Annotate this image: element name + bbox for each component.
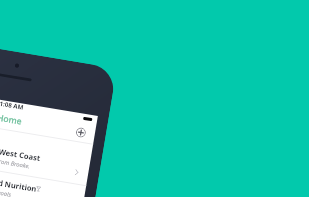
staticText: Food Nurition	[0, 175, 38, 194]
staticText: Home	[0, 112, 23, 128]
button[interactable]: Sunset Trip	[0, 191, 81, 197]
staticText: West Coast	[0, 146, 42, 163]
staticText: from Brooke.	[0, 157, 31, 171]
button[interactable]: Food Nurition	[0, 160, 86, 197]
button[interactable]: Add	[75, 127, 87, 138]
button[interactable]: Home	[0, 102, 96, 145]
staticText: 1:08 AM	[0, 99, 25, 111]
button[interactable]: West Coast	[0, 130, 91, 185]
staticText: Daily goals	[0, 186, 12, 197]
